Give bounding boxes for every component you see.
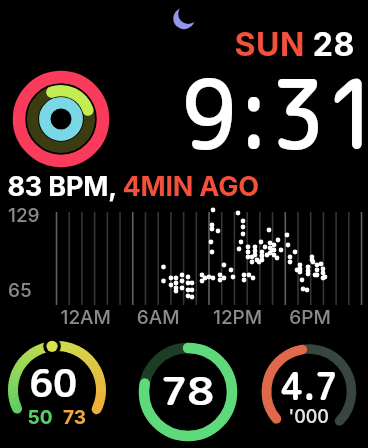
button[interactable] bbox=[180, 60, 365, 155]
button[interactable] bbox=[139, 343, 237, 441]
button[interactable] bbox=[8, 340, 106, 438]
button[interactable] bbox=[260, 343, 358, 441]
button[interactable] bbox=[12, 70, 110, 168]
button[interactable] bbox=[0, 168, 368, 330]
